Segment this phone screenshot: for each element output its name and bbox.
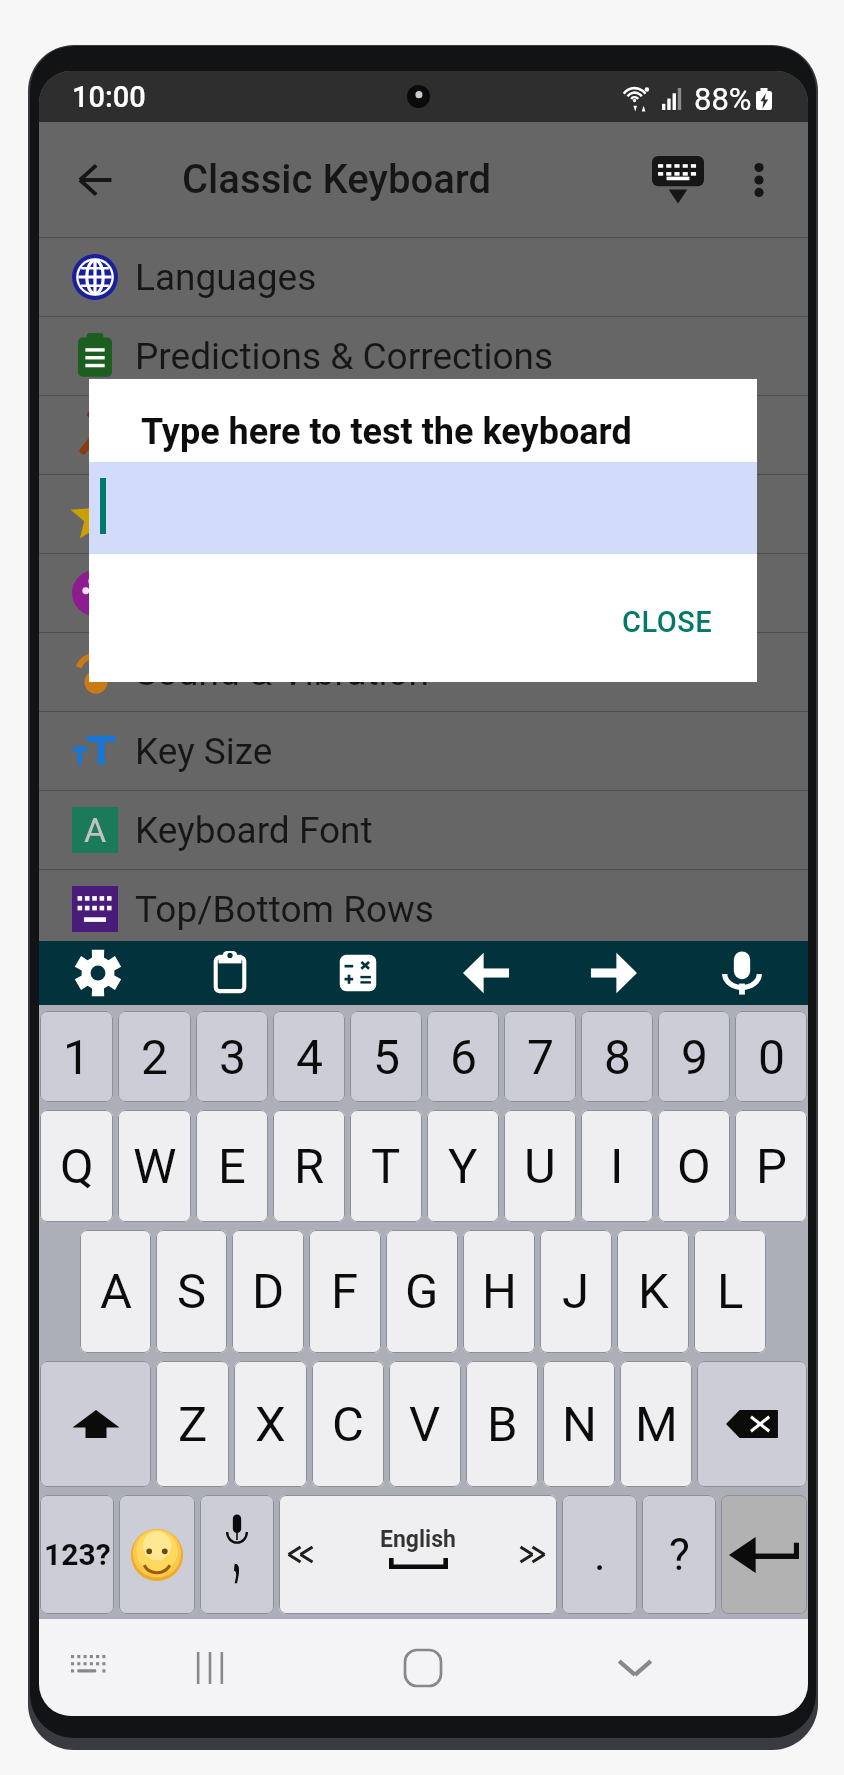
button[interactable]: V [389,1361,461,1487]
button[interactable]: Move left [454,941,518,1005]
button[interactable]: Hide keyboard [640,142,716,218]
button[interactable]: U [504,1110,576,1222]
staticText: 1 [63,1029,90,1085]
button[interactable]: A [39,791,808,869]
button[interactable]: A [80,1230,151,1353]
staticText: D [252,1263,285,1320]
staticText: ? [669,1529,690,1581]
button[interactable]: Enter [721,1495,807,1614]
staticText: U [524,1138,556,1195]
staticText: 123? [44,1537,111,1572]
button[interactable]: Calculator [326,941,390,1005]
button[interactable]: . [562,1495,637,1614]
button[interactable]: Move right [582,941,646,1005]
button[interactable]: Y [427,1110,499,1222]
button[interactable]: R [273,1110,345,1222]
button[interactable]: Switch keyboard [49,1619,129,1716]
button[interactable]: Languages [39,238,808,316]
staticText: CLOSE [622,605,713,639]
button[interactable]: Q [40,1110,113,1222]
button[interactable]: L [694,1230,766,1353]
button[interactable]: 0 [735,1011,807,1102]
button[interactable]: G [386,1230,458,1353]
staticText: Z [178,1396,208,1453]
button[interactable]: 7 [504,1011,576,1102]
button[interactable]: B [466,1361,538,1487]
staticText: W [133,1138,177,1195]
staticText: A [100,1263,132,1320]
staticText: F [331,1263,359,1320]
button[interactable]: Back [59,144,131,216]
staticText: J [562,1263,590,1320]
button[interactable]: Hide keyboard [590,1619,680,1716]
button[interactable]: More options [727,148,791,212]
button[interactable]: Predictions & Corrections [39,317,808,395]
button[interactable]: Settings [66,941,130,1005]
staticText: O [677,1138,711,1195]
button[interactable]: T [350,1110,422,1222]
staticText: I [610,1138,624,1195]
staticText: S [177,1263,207,1320]
staticText: 3 [219,1029,246,1085]
button[interactable]: 8 [581,1011,653,1102]
staticText: Predictions & Corrections [135,335,554,378]
button[interactable]: W [118,1110,191,1222]
button[interactable]: 9 [658,1011,730,1102]
button[interactable]: Z [156,1361,229,1487]
button[interactable]: 1 [40,1011,113,1102]
button[interactable]: H [463,1230,535,1353]
button[interactable]: X [234,1361,307,1487]
staticText: E [218,1138,246,1195]
button[interactable]: Voice input [710,941,774,1005]
button[interactable]: 123? [40,1495,114,1614]
staticText: 9 [681,1029,708,1085]
button[interactable]: 2 [118,1011,191,1102]
staticText: Key Size [135,730,273,773]
button[interactable]: Home [378,1619,468,1716]
button[interactable]: K [617,1230,689,1353]
button[interactable]: Emoji [119,1495,195,1614]
button[interactable]: N [543,1361,615,1487]
button[interactable]: 6 [427,1011,499,1102]
button[interactable]: C [312,1361,384,1487]
button[interactable]: D [232,1230,304,1353]
button[interactable]: S [156,1230,227,1353]
button[interactable]: Space [279,1495,557,1614]
button[interactable]: Shift [40,1361,151,1487]
staticText: 6 [450,1029,477,1085]
button[interactable]: 5 [350,1011,422,1102]
button[interactable]: Key Size [39,712,808,790]
staticText: English [380,1526,456,1553]
button[interactable]: ? [642,1495,716,1614]
button[interactable]: Clipboard [198,941,262,1005]
button[interactable]: O [658,1110,730,1222]
button[interactable]: CLOSE [608,597,727,647]
button[interactable]: I [581,1110,653,1222]
button[interactable]: Emoji & Stickers [39,554,808,632]
button[interactable]: J [540,1230,612,1353]
button[interactable]: Top/Bottom Rows [39,870,808,948]
button[interactable]: M [620,1361,692,1487]
button[interactable]: Look & Feel [39,475,808,553]
staticText: 8 [604,1029,631,1085]
staticText: G [405,1263,439,1320]
button[interactable]: E [196,1110,268,1222]
button[interactable]: 4 [273,1011,345,1102]
button[interactable]: Gestures & Actions [39,396,808,474]
staticText: 5 [373,1029,400,1085]
button[interactable]: 3 [196,1011,268,1102]
button[interactable]: P [735,1110,807,1222]
staticText: Gestures & Actions [135,414,449,457]
staticText: . [594,1529,606,1581]
staticText: N [562,1396,597,1453]
staticText: Languages [135,256,317,299]
button[interactable]: Backspace [697,1361,807,1487]
staticText: Sound & Vibration [135,651,430,694]
staticText: Classic Keyboard [182,156,492,203]
button[interactable]: Sound & Vibration [39,633,808,711]
button[interactable]: Recent apps [165,1619,255,1716]
button[interactable]: F [309,1230,381,1353]
staticText: M [635,1396,678,1453]
button[interactable]: Voice input [200,1495,274,1614]
